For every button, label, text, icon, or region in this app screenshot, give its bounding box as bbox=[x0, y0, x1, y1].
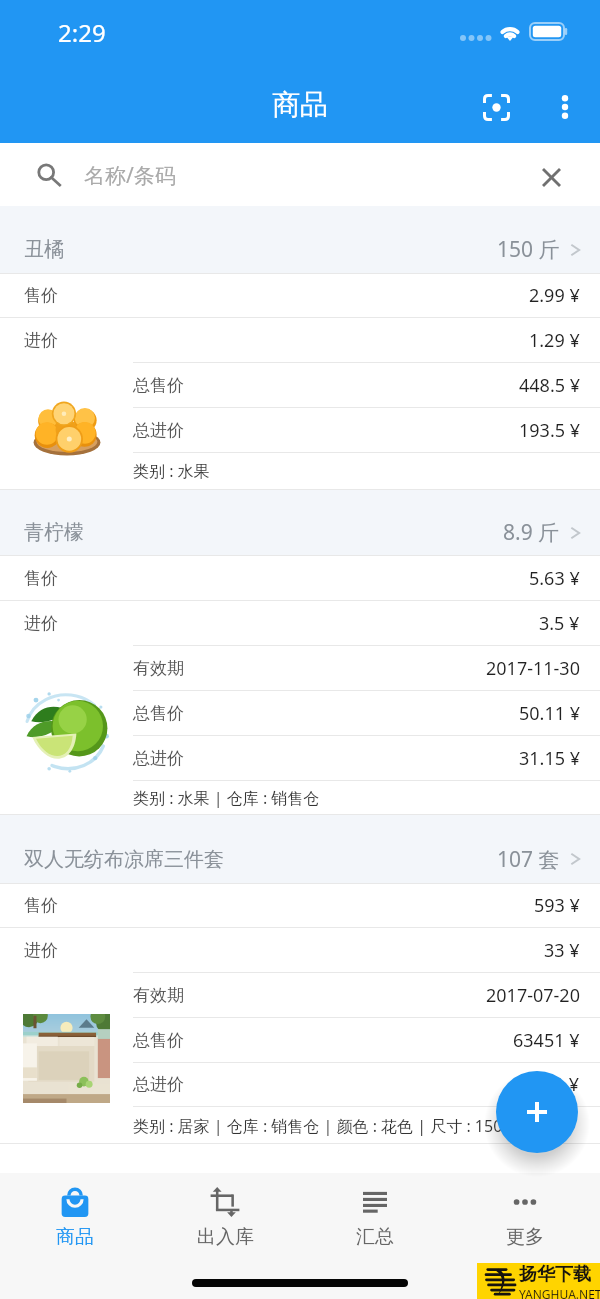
staticText: 总进价 bbox=[133, 748, 184, 769]
button[interactable]: More options bbox=[537, 79, 593, 135]
staticText: 进价 bbox=[24, 613, 58, 634]
staticText: 3.5 ¥ bbox=[539, 611, 580, 636]
button[interactable]: 丑橘 bbox=[0, 206, 600, 273]
staticText: 31.15 ¥ bbox=[519, 746, 580, 771]
button[interactable]: 青柠檬 bbox=[0, 490, 600, 555]
staticText: 593 ¥ bbox=[534, 893, 580, 918]
staticText: 3531 ¥ bbox=[523, 1072, 580, 1097]
button[interactable]: 有效期 bbox=[133, 646, 600, 690]
button[interactable]: 商品 bbox=[0, 1173, 150, 1259]
button[interactable]: 有效期 bbox=[0, 645, 600, 814]
staticText: 青柠檬 bbox=[24, 520, 84, 545]
staticText: 150 斤 bbox=[497, 235, 560, 264]
staticText: 8.9 斤 bbox=[503, 518, 560, 547]
staticText: 进价 bbox=[24, 940, 58, 961]
button[interactable]: 进价 bbox=[0, 928, 600, 972]
staticText: 2.99 ¥ bbox=[529, 283, 580, 308]
staticText: 类别 : 水果 | 仓库 : 销售仓 bbox=[133, 787, 320, 809]
button[interactable]: 总售价 bbox=[133, 691, 600, 735]
staticText: 有效期 bbox=[133, 985, 184, 1006]
staticText: 总进价 bbox=[133, 420, 184, 441]
staticText: 总售价 bbox=[133, 375, 184, 396]
staticText: 丑橘 bbox=[24, 237, 64, 262]
staticText: 有效期 bbox=[133, 658, 184, 679]
staticText: 2017-07-20 bbox=[486, 983, 580, 1008]
staticText: 107 套 bbox=[497, 845, 560, 874]
staticText: 扬华下载 bbox=[519, 1263, 591, 1286]
staticText: 类别 : 居家 | 仓库 : 销售仓 | 颜色 : 花色 | 尺寸 : 150x… bbox=[133, 1115, 539, 1137]
button[interactable]: 售价 bbox=[0, 884, 600, 927]
button[interactable]: 总售价 bbox=[133, 363, 600, 407]
button[interactable]: 出入库 bbox=[150, 1173, 300, 1259]
button[interactable]: 售价 bbox=[0, 556, 600, 600]
button[interactable]: Add product bbox=[496, 1071, 578, 1153]
button[interactable]: 总售价 bbox=[0, 362, 600, 489]
button[interactable]: Clear search bbox=[531, 157, 571, 197]
staticText: 2017-11-30 bbox=[486, 656, 580, 681]
staticText: 50.11 ¥ bbox=[519, 701, 580, 726]
button[interactable]: 有效期 bbox=[133, 973, 600, 1017]
button[interactable]: 进价 bbox=[0, 601, 600, 645]
button[interactable]: 汇总 bbox=[300, 1173, 450, 1259]
button[interactable]: 总售价 bbox=[133, 1018, 600, 1062]
staticText: 2:29 bbox=[58, 16, 106, 49]
button[interactable]: 进价 bbox=[0, 318, 600, 362]
staticText: 193.5 ¥ bbox=[519, 418, 580, 443]
staticText: 售价 bbox=[24, 568, 58, 589]
button[interactable]: 总进价 bbox=[133, 736, 600, 780]
staticText: 汇总 bbox=[356, 1225, 394, 1249]
staticText: 名称/条码 bbox=[84, 161, 176, 190]
staticText: 总售价 bbox=[133, 1030, 184, 1051]
staticText: 双人无纺布凉席三件套 bbox=[24, 847, 224, 872]
button[interactable]: 有效期 bbox=[0, 972, 600, 1144]
button[interactable]: Scan barcode bbox=[468, 79, 524, 135]
button[interactable]: 更多 bbox=[450, 1173, 600, 1259]
staticText: 商品 bbox=[56, 1225, 94, 1249]
staticText: 33 ¥ bbox=[544, 938, 580, 963]
staticText: 448.5 ¥ bbox=[519, 373, 580, 398]
button[interactable]: 双人无纺布凉席三件套 bbox=[0, 815, 600, 883]
staticText: 总售价 bbox=[133, 703, 184, 724]
staticText: 售价 bbox=[24, 895, 58, 916]
button[interactable]: 总进价 bbox=[133, 408, 600, 452]
button[interactable]: 售价 bbox=[0, 274, 600, 317]
button[interactable]: 总进价 bbox=[133, 1063, 600, 1106]
staticText: 63451 ¥ bbox=[513, 1028, 580, 1053]
staticText: 出入库 bbox=[197, 1225, 254, 1249]
staticText: 进价 bbox=[24, 330, 58, 351]
staticText: 总进价 bbox=[133, 1074, 184, 1095]
staticText: 售价 bbox=[24, 285, 58, 306]
staticText: 1.29 ¥ bbox=[529, 328, 580, 353]
staticText: 类别 : 水果 bbox=[133, 460, 210, 482]
staticText: 更多 bbox=[506, 1225, 544, 1249]
staticText: YANGHUA.NET bbox=[519, 1286, 600, 1299]
staticText: 5.63 ¥ bbox=[529, 566, 580, 591]
staticText: 商品 bbox=[272, 87, 328, 122]
